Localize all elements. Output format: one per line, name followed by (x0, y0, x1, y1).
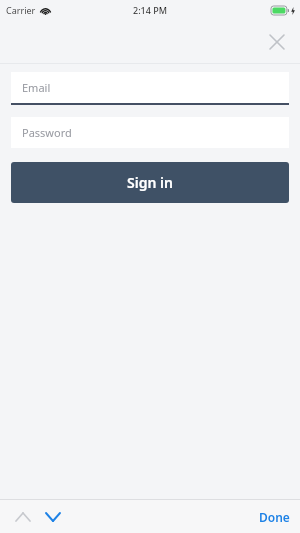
button[interactable]: Email (11, 72, 289, 105)
button[interactable]: Sign in (11, 162, 289, 203)
button[interactable]: Next field (38, 502, 68, 532)
button[interactable]: Close (260, 25, 294, 59)
staticText: Sign in (127, 173, 173, 192)
staticText: Done (259, 509, 290, 525)
staticText: Password (22, 125, 72, 140)
button[interactable]: Done (255, 505, 294, 529)
staticText: Email (22, 80, 51, 95)
button[interactable]: Previous field (8, 502, 38, 532)
button[interactable]: Password (11, 117, 289, 148)
staticText: 2:14 PM (133, 4, 167, 16)
staticText: Carrier (6, 4, 36, 16)
